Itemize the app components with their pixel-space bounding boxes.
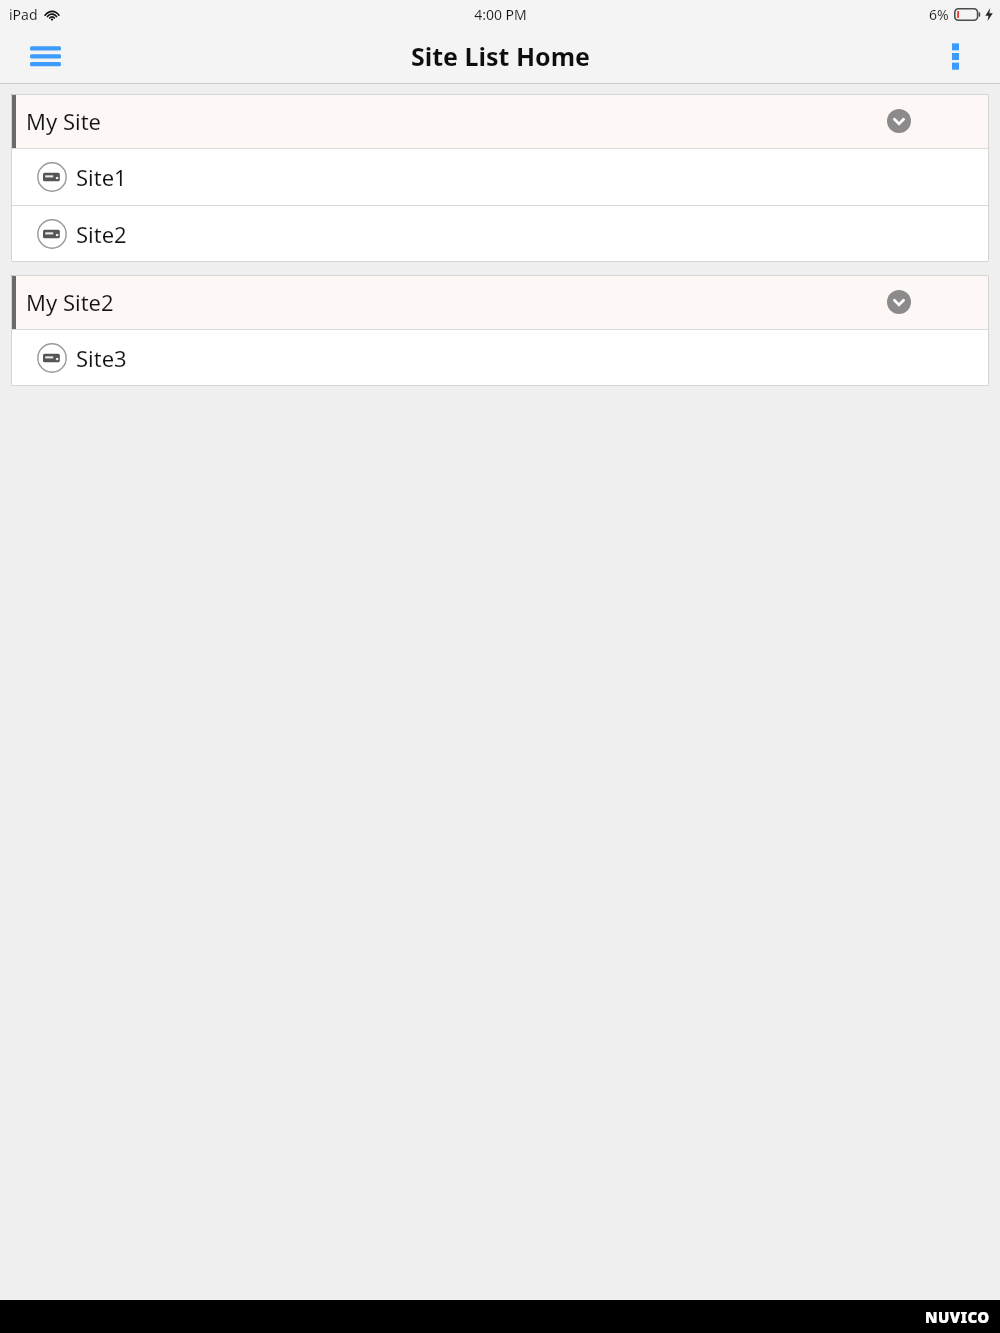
- button[interactable]: My Site2: [11, 275, 989, 329]
- button[interactable]: Site3: [11, 330, 989, 386]
- staticText: Site2: [76, 219, 127, 249]
- staticText: My Site: [26, 106, 887, 136]
- button[interactable]: My Site: [11, 94, 989, 148]
- staticText: Site3: [76, 343, 127, 373]
- staticText: iPad: [9, 5, 38, 24]
- staticText: Site List Home: [411, 39, 590, 73]
- staticText: My Site2: [26, 287, 887, 317]
- staticText: 6%: [929, 5, 949, 24]
- staticText: NUVICO: [925, 1307, 990, 1327]
- button[interactable]: More options: [935, 36, 975, 76]
- button[interactable]: Site1: [11, 149, 989, 205]
- button[interactable]: Navigation menu: [20, 34, 70, 78]
- staticText: 4:00 PM: [474, 5, 527, 24]
- staticText: Site1: [76, 162, 127, 192]
- button[interactable]: Site2: [11, 206, 989, 262]
